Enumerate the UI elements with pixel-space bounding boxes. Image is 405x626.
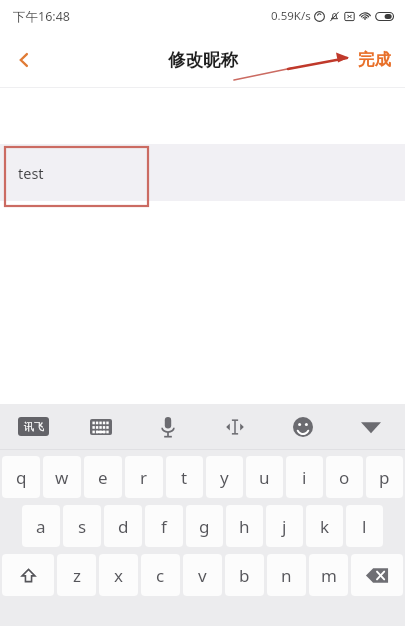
staticText: x (114, 564, 123, 587)
button[interactable]: o (326, 456, 363, 498)
button[interactable]: Voice input (151, 410, 185, 444)
button[interactable]: c (141, 554, 180, 596)
button[interactable]: n (267, 554, 306, 596)
button[interactable]: w (43, 456, 81, 498)
button[interactable]: s (63, 505, 101, 547)
staticText: p (379, 466, 390, 489)
button[interactable]: h (226, 505, 263, 547)
button[interactable]: y (206, 456, 243, 498)
button[interactable]: f (145, 505, 183, 547)
button[interactable]: k (306, 505, 343, 547)
staticText: s (78, 515, 87, 538)
staticText: m (321, 564, 337, 587)
button[interactable]: a (22, 505, 60, 547)
button[interactable]: r (125, 456, 163, 498)
staticText: w (55, 466, 69, 489)
staticText: q (16, 466, 27, 489)
staticText: test (18, 163, 44, 183)
staticText: 讯飞 (24, 420, 44, 433)
button[interactable]: p (366, 456, 403, 498)
button[interactable]: m (309, 554, 348, 596)
button[interactable]: Back (0, 36, 48, 84)
staticText: o (339, 466, 350, 489)
staticText: b (239, 564, 250, 587)
button[interactable]: Emoji (286, 410, 320, 444)
staticText: t (181, 466, 188, 489)
staticText: f (161, 515, 167, 538)
button[interactable]: Move cursor (218, 410, 252, 444)
staticText: n (281, 564, 292, 587)
button[interactable]: test (0, 144, 405, 201)
button[interactable]: i (286, 456, 323, 498)
button[interactable]: Backspace (351, 554, 403, 596)
staticText: 下午16:48 (13, 8, 70, 25)
button[interactable]: x (99, 554, 138, 596)
button[interactable]: j (266, 505, 303, 547)
button[interactable]: 完成 (344, 39, 405, 80)
button[interactable]: Shift (2, 554, 54, 596)
staticText: e (98, 466, 108, 489)
staticText: r (140, 466, 148, 489)
staticText: c (156, 564, 165, 587)
button[interactable]: u (246, 456, 283, 498)
staticText: a (36, 515, 46, 538)
staticText: 0.59K/s (271, 8, 311, 24)
staticText: j (282, 515, 287, 538)
button[interactable]: v (183, 554, 222, 596)
button[interactable]: d (104, 505, 142, 547)
button[interactable]: Hide keyboard (354, 410, 388, 444)
staticText: h (239, 515, 250, 538)
staticText: 完成 (358, 49, 391, 70)
staticText: i (302, 466, 307, 489)
button[interactable]: t (166, 456, 203, 498)
staticText: u (259, 466, 270, 489)
staticText: d (118, 515, 129, 538)
staticText: v (198, 564, 207, 587)
staticText: l (362, 515, 367, 538)
button[interactable]: q (2, 456, 40, 498)
button[interactable]: Keyboard layout (84, 410, 118, 444)
button[interactable]: Input method (18, 417, 49, 436)
button[interactable]: b (225, 554, 264, 596)
button[interactable]: l (346, 505, 383, 547)
staticText: z (73, 564, 81, 587)
button[interactable]: z (57, 554, 96, 596)
staticText: 修改昵称 (168, 49, 238, 71)
button[interactable]: g (186, 505, 223, 547)
staticText: g (199, 515, 210, 538)
staticText: k (320, 515, 330, 538)
staticText: y (220, 466, 229, 489)
button[interactable]: e (84, 456, 122, 498)
